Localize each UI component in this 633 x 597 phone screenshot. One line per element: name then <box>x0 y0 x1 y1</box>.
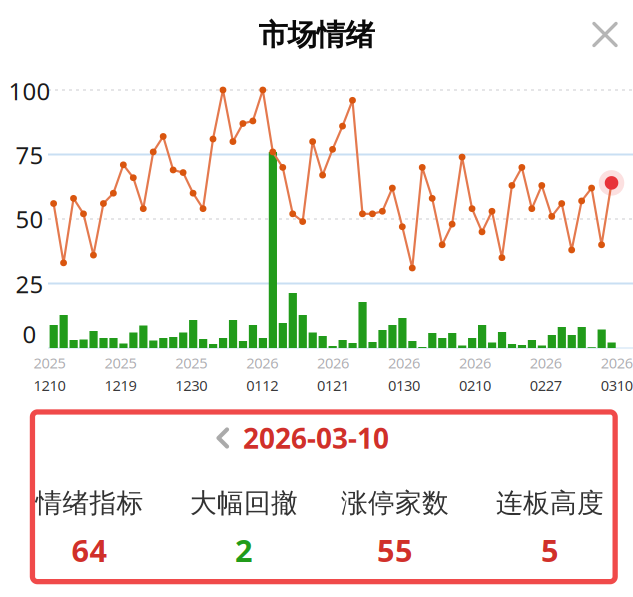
staticText: 2026 <box>601 353 633 372</box>
staticText: 100 <box>8 75 50 107</box>
staticText: 50 <box>15 203 43 235</box>
staticText: 1230 <box>175 375 207 395</box>
staticText: 大幅回撤 <box>190 487 298 519</box>
button[interactable]: Close <box>587 17 623 52</box>
staticText: 64 <box>71 530 107 570</box>
staticText: 75 <box>15 139 43 171</box>
staticText: 情绪指标 <box>35 487 143 519</box>
staticText: 2026 <box>246 353 278 372</box>
staticText: 0 <box>22 318 36 350</box>
staticText: 涨停家数 <box>341 487 449 519</box>
staticText: 2026-03-10 <box>243 419 389 457</box>
staticText: 2025 <box>175 353 207 372</box>
staticText: 0112 <box>246 375 278 395</box>
button[interactable]: 2026-03-10 <box>31 414 606 462</box>
staticText: 1210 <box>33 375 65 395</box>
staticText: 0210 <box>459 375 491 395</box>
staticText: 2026 <box>388 353 420 372</box>
staticText: 25 <box>15 268 43 300</box>
staticText: 0310 <box>601 375 633 395</box>
staticText: 2026 <box>530 353 562 372</box>
staticText: 2025 <box>33 353 65 372</box>
staticText: 1219 <box>104 375 136 395</box>
staticText: 连板高度 <box>496 487 604 519</box>
staticText: 0130 <box>388 375 420 395</box>
staticText: 2025 <box>104 353 136 372</box>
staticText: 0227 <box>530 375 562 395</box>
staticText: 2026 <box>459 353 491 372</box>
staticText: 5 <box>541 530 559 570</box>
staticText: 市场情绪 <box>258 17 374 53</box>
staticText: 2 <box>235 530 253 570</box>
staticText: 2026 <box>317 353 349 372</box>
staticText: 55 <box>377 530 413 570</box>
staticText: 0121 <box>317 375 349 395</box>
